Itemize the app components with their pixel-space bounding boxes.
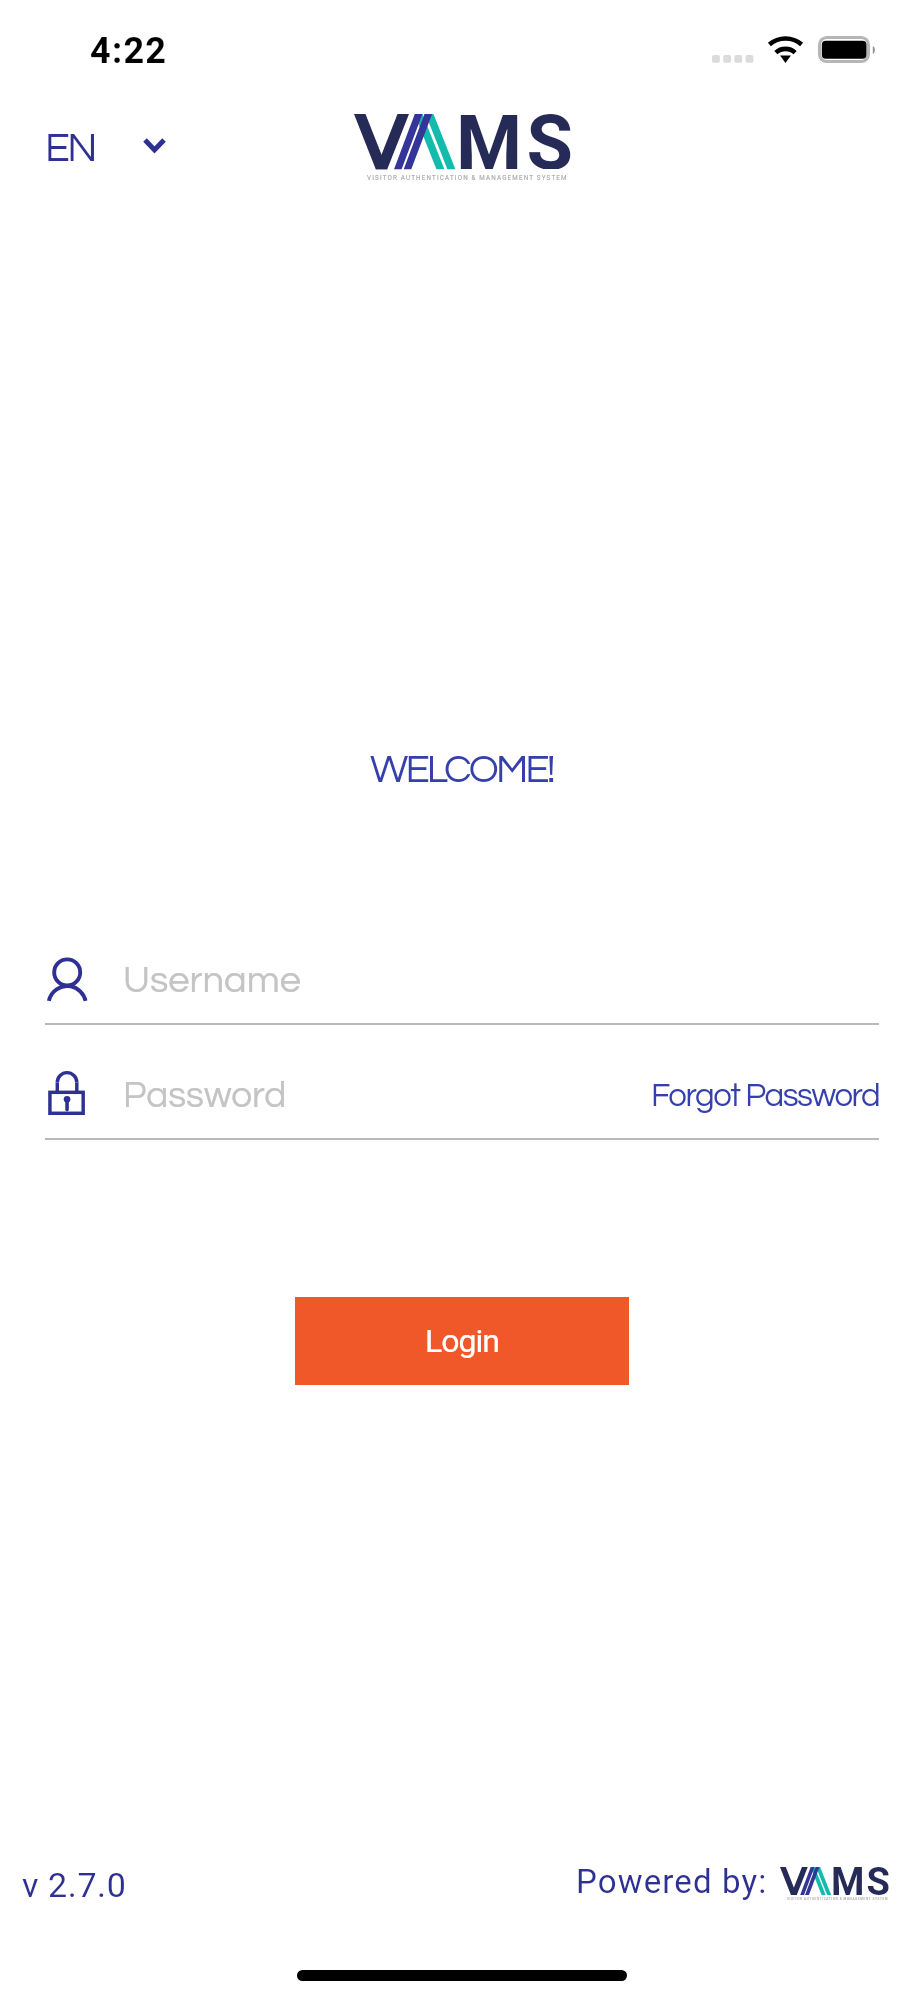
staticText: v 2.7.0 [22, 1865, 127, 1905]
staticText: VISITOR AUTHENTICATION & MANAGEMENT SYST… [787, 1897, 889, 1901]
button[interactable]: Login [295, 1297, 629, 1385]
staticText: MS [831, 1860, 893, 1895]
button[interactable]: Forgot Password [635, 1067, 896, 1125]
other: Wi-Fi [767, 36, 804, 63]
staticText: Password [123, 1077, 287, 1115]
staticText: Username [123, 961, 301, 1000]
other: Password [48, 1071, 85, 1116]
staticText: Login [425, 1322, 499, 1360]
staticText: Powered by: [576, 1862, 768, 1901]
other: Username [46, 955, 88, 1001]
staticText: EN [45, 127, 95, 169]
button[interactable]: Password [45, 1066, 879, 1138]
staticText: 4:22 [90, 30, 168, 72]
button[interactable]: Username [45, 946, 879, 1026]
other: Battery [818, 36, 876, 63]
staticText: MS [456, 99, 578, 169]
button[interactable]: EN [31, 117, 178, 179]
staticText: WELCOME! [370, 749, 553, 790]
staticText: VISITOR AUTHENTICATION & MANAGEMENT SYST… [367, 174, 568, 181]
staticText: Forgot Password [651, 1079, 880, 1113]
